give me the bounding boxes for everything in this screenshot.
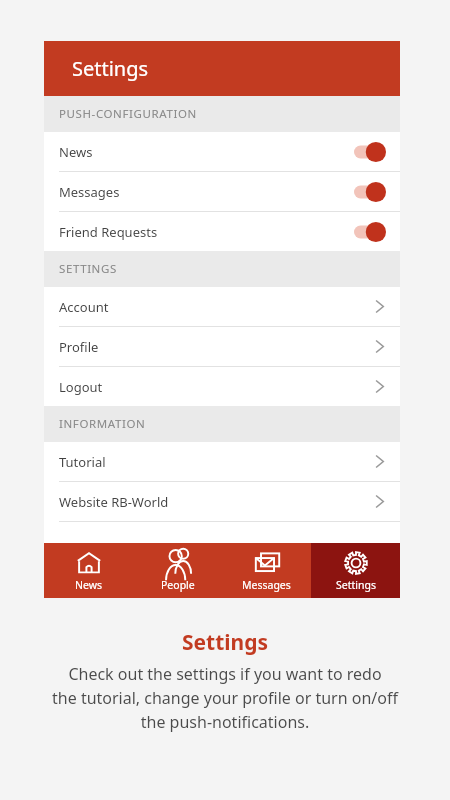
button[interactable]: Messages: [222, 543, 311, 598]
staticText: Settings: [72, 55, 149, 82]
staticText: Settings: [336, 578, 376, 592]
button[interactable]: Logout: [44, 367, 400, 406]
other: Toggle: [354, 181, 386, 203]
staticText: News: [59, 143, 354, 161]
button[interactable]: Account: [44, 287, 400, 326]
button[interactable]: Profile: [44, 327, 400, 366]
button[interactable]: Settings: [311, 543, 400, 598]
button[interactable]: Website RB-World: [44, 482, 400, 521]
staticText: News: [75, 578, 102, 592]
button[interactable]: Friend Requests: [44, 212, 400, 251]
other: Toggle: [354, 141, 386, 163]
staticText: Settings: [182, 628, 269, 657]
staticText: PUSH-CONFIGURATION: [59, 106, 197, 122]
staticText: Messages: [242, 578, 291, 592]
staticText: Account: [59, 298, 375, 316]
staticText: Logout: [59, 378, 375, 396]
staticText: INFORMATION: [59, 416, 146, 432]
staticText: Check out the settings if you want to re…: [18, 663, 432, 733]
button[interactable]: People: [133, 543, 222, 598]
staticText: Profile: [59, 338, 375, 356]
button[interactable]: News: [44, 132, 400, 171]
staticText: Tutorial: [59, 453, 375, 471]
button[interactable]: Tutorial: [44, 442, 400, 481]
button[interactable]: News: [44, 543, 133, 598]
other: Toggle: [354, 221, 386, 243]
staticText: SETTINGS: [59, 261, 117, 277]
button[interactable]: Messages: [44, 172, 400, 211]
staticText: People: [161, 578, 195, 592]
staticText: Messages: [59, 183, 354, 201]
staticText: Website RB-World: [59, 493, 375, 511]
staticText: Friend Requests: [59, 223, 354, 241]
